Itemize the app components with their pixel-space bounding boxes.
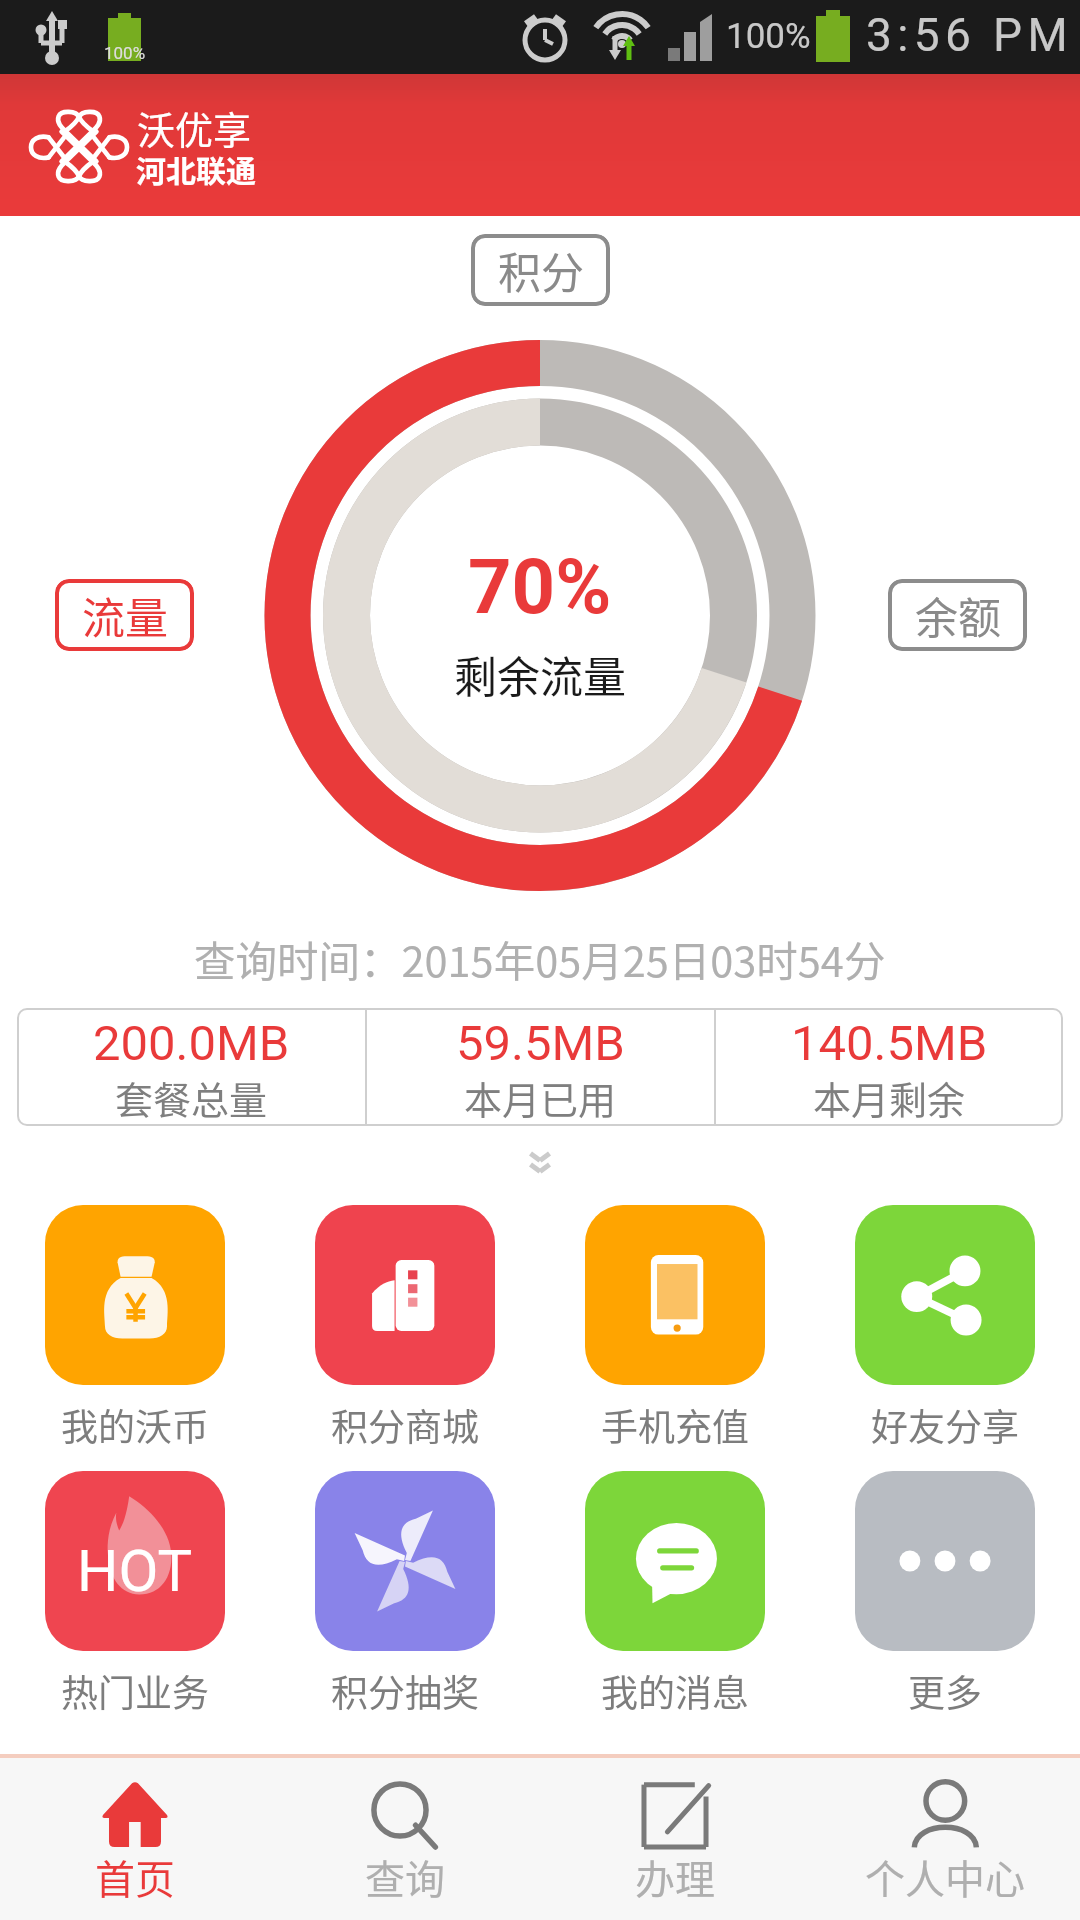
button[interactable]: 我的消息: [585, 1471, 765, 1718]
staticText: 积分: [498, 239, 584, 301]
button[interactable]: 办理: [540, 1758, 810, 1920]
button[interactable]: 个人中心: [810, 1758, 1080, 1920]
staticText: 我的消息: [601, 1664, 749, 1718]
button[interactable]: 59.5MB: [367, 1008, 714, 1126]
staticText: 本月已用: [464, 1070, 617, 1125]
staticText: 积分商城: [331, 1398, 479, 1452]
button[interactable]: 积分抽奖: [315, 1471, 495, 1718]
button[interactable]: 流量: [55, 579, 194, 651]
staticText: 3:56 PM: [866, 8, 1074, 62]
button[interactable]: 查询: [270, 1758, 540, 1920]
button[interactable]: 更多: [855, 1471, 1035, 1718]
staticText: 热门业务: [61, 1664, 209, 1718]
button[interactable]: 余额: [888, 579, 1027, 651]
staticText: 查询时间：2015年05月25日03时54分: [194, 929, 886, 989]
staticText: 积分抽奖: [331, 1664, 479, 1718]
button[interactable]: 140.5MB: [716, 1008, 1063, 1126]
button[interactable]: 首页: [0, 1758, 270, 1920]
staticText: 100%: [104, 43, 146, 63]
button[interactable]: 手机充值: [585, 1205, 765, 1452]
staticText: 流量: [82, 584, 168, 646]
staticText: 140.5MB: [791, 1015, 988, 1072]
staticText: 河北联通: [136, 147, 256, 190]
staticText: 套餐总量: [115, 1070, 268, 1125]
staticText: 个人中心: [865, 1848, 1025, 1906]
staticText: 我的沃币: [61, 1398, 209, 1452]
staticText: 首页: [95, 1848, 175, 1906]
staticText: 剩余流量: [454, 643, 626, 705]
staticText: 100%: [726, 16, 811, 57]
staticText: 查询: [365, 1848, 445, 1906]
staticText: 70%: [468, 542, 612, 631]
button[interactable]: Expand: [510, 1138, 570, 1186]
button[interactable]: 好友分享: [855, 1205, 1035, 1452]
staticText: 余额: [915, 584, 1001, 646]
staticText: 本月剩余: [813, 1070, 966, 1125]
staticText: HOT: [77, 1537, 193, 1605]
button[interactable]: 积分: [471, 234, 610, 306]
button[interactable]: 200.0MB: [17, 1008, 365, 1126]
button[interactable]: 积分商城: [315, 1205, 495, 1452]
staticText: 200.0MB: [93, 1015, 290, 1072]
button[interactable]: HOT: [45, 1471, 225, 1718]
staticText: 好友分享: [871, 1398, 1019, 1452]
staticText: 沃优享: [137, 100, 252, 155]
staticText: 更多: [908, 1664, 982, 1718]
staticText: 59.5MB: [456, 1015, 625, 1072]
button[interactable]: 我的沃币: [45, 1205, 225, 1452]
staticText: 手机充值: [601, 1398, 749, 1452]
staticText: 办理: [635, 1848, 715, 1906]
